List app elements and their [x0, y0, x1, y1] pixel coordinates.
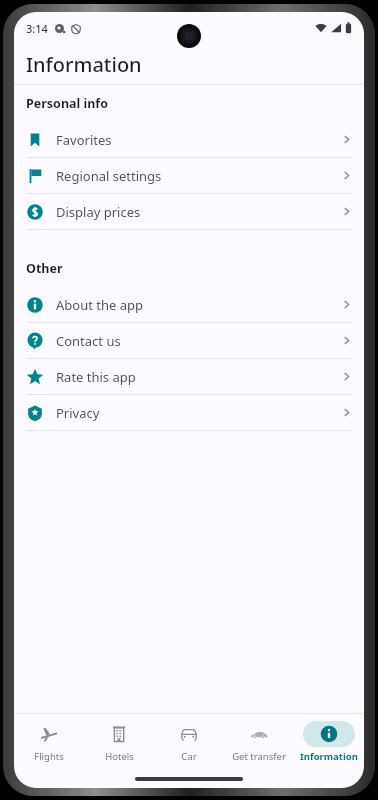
- staticText: Display prices: [56, 203, 141, 221]
- staticText: Hotels: [105, 750, 134, 763]
- button[interactable]: Privacy: [14, 395, 364, 430]
- button[interactable]: Hotels: [84, 714, 154, 770]
- staticText: Contact us: [56, 332, 121, 350]
- staticText: Car: [181, 750, 197, 763]
- button[interactable]: About the app: [14, 287, 364, 322]
- staticText: Favorites: [56, 131, 112, 149]
- staticText: Information: [300, 750, 358, 763]
- button[interactable]: Information: [294, 714, 364, 770]
- staticText: Personal info: [26, 95, 109, 112]
- staticText: Information: [26, 51, 142, 78]
- button[interactable]: Rate this app: [14, 359, 364, 394]
- staticText: Get transfer: [232, 750, 286, 763]
- staticText: Flights: [34, 750, 64, 763]
- button[interactable]: Flights: [14, 714, 84, 770]
- button[interactable]: Display prices: [14, 194, 364, 229]
- staticText: Other: [26, 260, 63, 277]
- staticText: Regional settings: [56, 167, 162, 185]
- staticText: Rate this app: [56, 368, 136, 386]
- staticText: About the app: [56, 296, 143, 314]
- button[interactable]: Favorites: [14, 122, 364, 157]
- staticText: 3:14: [26, 21, 48, 36]
- button[interactable]: Car: [154, 714, 224, 770]
- staticText: Privacy: [56, 404, 100, 422]
- button[interactable]: Contact us: [14, 323, 364, 358]
- button[interactable]: Regional settings: [14, 158, 364, 193]
- button[interactable]: Get transfer: [224, 714, 294, 770]
